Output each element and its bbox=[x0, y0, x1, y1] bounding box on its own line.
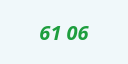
staticText: 61 06 bbox=[39, 19, 89, 46]
